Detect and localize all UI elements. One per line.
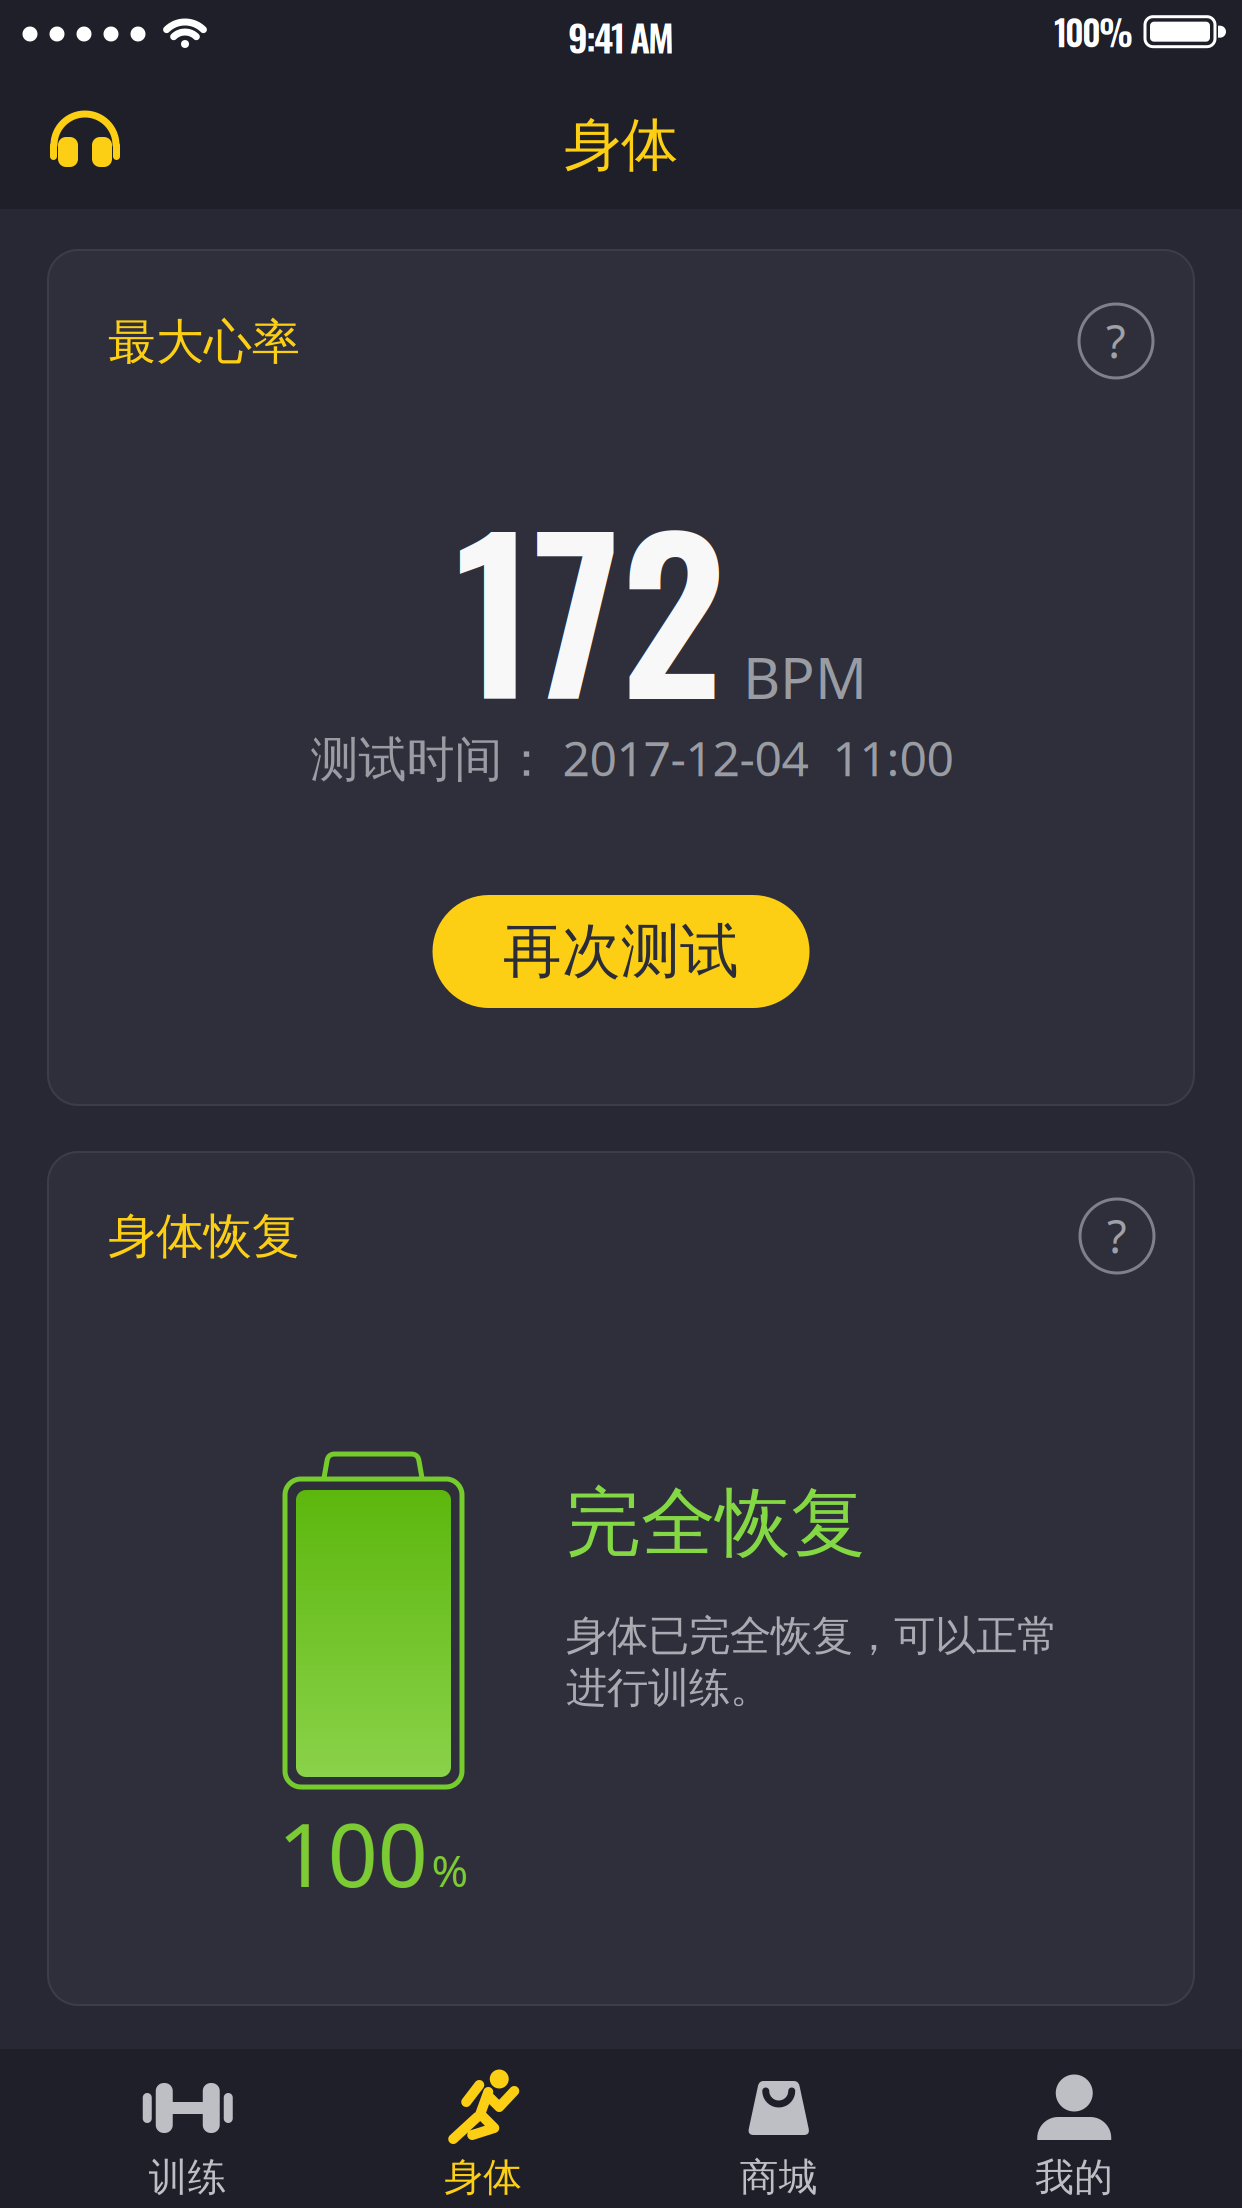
button[interactable]: 我的 [926,2049,1222,2202]
staticText: 再次测试 [503,914,739,988]
button[interactable]: Help [1079,304,1153,378]
staticText: 100 [277,1793,427,1913]
staticText: 172 [455,454,725,758]
staticText: 完全恢复 [566,1476,866,1570]
staticText: 身体已完全恢复，可以正常 进行训练。 [566,1610,1058,1714]
button[interactable]: 商城 [631,2049,926,2202]
staticText: 身体恢复 [108,1206,300,1266]
staticText: 身体 [564,109,678,181]
staticText: 我的 [1035,2153,1113,2202]
button[interactable]: Music [0,66,120,167]
button[interactable]: Help [1080,1199,1154,1273]
staticText: BPM [743,638,867,716]
button[interactable]: 再次测试 [432,895,809,1008]
staticText: 100% [1054,6,1133,57]
staticText: ? [1106,310,1126,372]
staticText: 最大心率 [108,312,300,372]
staticText: ? [1107,1205,1127,1267]
staticText: 身体 [444,2153,522,2202]
staticText: 商城 [740,2153,818,2202]
staticText: 训练 [149,2153,227,2202]
staticText: 测试时间： 2017-12-04 11:00 [310,725,953,790]
button[interactable]: 训练 [40,2049,335,2202]
staticText: 9:41 AM [568,9,674,64]
button[interactable]: 身体 [335,2049,631,2202]
staticText: % [431,1840,468,1900]
